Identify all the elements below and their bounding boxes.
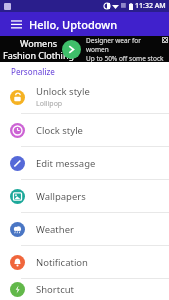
staticText: Hello, Uptodown — [29, 17, 118, 32]
button[interactable]: Shortcut — [0, 279, 169, 300]
button[interactable]: Close ad — [162, 37, 168, 43]
staticText: 11:32 AM — [135, 1, 166, 11]
staticText: Notification — [36, 256, 88, 269]
staticText: Womens — [20, 37, 57, 49]
staticText: Wallpapers — [36, 190, 86, 203]
button[interactable]: Unlock style — [0, 81, 169, 113]
button[interactable]: Edit message — [0, 147, 169, 179]
staticText: Clock style — [36, 124, 83, 137]
staticText: Up to 50% off some stock — [86, 54, 164, 62]
button[interactable]: Wallpapers — [0, 180, 169, 212]
staticText: Unlock style — [36, 85, 90, 98]
button[interactable]: Womens — [0, 36, 169, 62]
staticText: Designer wear for women — [86, 36, 164, 54]
staticText: Lollipop — [36, 99, 63, 109]
button[interactable]: Weather — [0, 213, 169, 245]
staticText: Shortcut — [36, 283, 75, 296]
other: Go to offer — [62, 40, 81, 59]
staticText: Edit message — [36, 157, 96, 170]
button[interactable]: Open navigation menu — [7, 15, 25, 33]
staticText: Weather — [36, 223, 74, 236]
staticText: Fashion Clothing — [3, 49, 74, 61]
button[interactable]: Notification — [0, 246, 169, 278]
button[interactable]: Clock style — [0, 114, 169, 146]
staticText: Personalize — [11, 66, 55, 77]
